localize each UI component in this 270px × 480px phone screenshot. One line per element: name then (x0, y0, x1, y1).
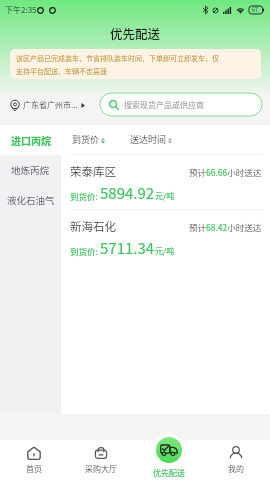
staticText: 液化石油气 (7, 193, 55, 207)
button[interactable]: 进口丙烷 (0, 125, 61, 155)
staticText: 我的 (228, 463, 244, 475)
staticText: 预计68.42小时送达 (189, 221, 262, 233)
staticText: 下午2:35 (5, 4, 37, 16)
button[interactable]: 广东省广州市... (8, 95, 87, 115)
staticText: 地炼丙烷 (11, 163, 50, 177)
button[interactable]: Purchase hall (67, 440, 134, 480)
staticText: 到货价 (72, 133, 100, 146)
button[interactable]: 新海石化 (61, 210, 270, 264)
staticText: 到货价: (70, 245, 98, 257)
button[interactable]: 到货价 (71, 128, 106, 151)
staticText: 新海石化 (70, 218, 116, 235)
staticText: 采购大厅 (85, 463, 117, 475)
button[interactable]: 荣泰库区 (61, 155, 270, 209)
staticText: 送达时间 (130, 133, 167, 146)
staticText: 67 (252, 6, 259, 14)
button[interactable]: Home (0, 440, 67, 480)
staticText: 5711.34 (100, 237, 155, 259)
staticText: 支持平台配送、车辆不走高速 (16, 66, 107, 76)
button[interactable]: 地炼丙烷 (0, 155, 61, 185)
button[interactable]: 搜索现货产品或供应商 (100, 93, 262, 116)
button[interactable]: 送达时间 (129, 128, 173, 151)
staticText: 搜索现货产品或供应商 (124, 99, 204, 111)
staticText: 首页 (26, 463, 42, 475)
button[interactable]: 优先配送 (135, 434, 202, 480)
staticText: 广东省广州市... (23, 99, 78, 111)
staticText: 元/吨 (155, 190, 175, 202)
staticText: 5894.92 (100, 182, 155, 204)
staticText: 该区产品已完成装车，节省排队装车时间，下单即可立即发车，仅 (16, 53, 219, 63)
staticText: 进口丙烷 (11, 133, 51, 147)
button[interactable]: 液化石油气 (0, 185, 61, 215)
staticText: 荣泰库区 (70, 163, 116, 180)
staticText: 元/吨 (155, 245, 175, 257)
staticText: 到货价: (70, 190, 98, 202)
button[interactable]: Profile (202, 440, 270, 480)
staticText: 优先配送 (110, 24, 161, 42)
staticText: 优先配送 (153, 467, 185, 479)
staticText: 预计66.66小时送达 (189, 166, 262, 178)
